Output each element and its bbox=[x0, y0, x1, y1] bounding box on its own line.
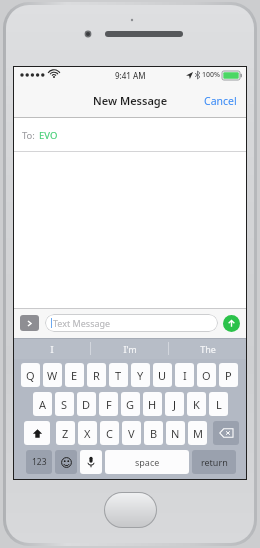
staticText: B bbox=[150, 426, 158, 441]
staticText: The bbox=[200, 343, 216, 355]
staticText: F bbox=[106, 397, 112, 412]
staticText: 100% bbox=[202, 70, 220, 80]
staticText: Text Message bbox=[53, 317, 111, 329]
button[interactable]: I bbox=[175, 363, 194, 387]
button[interactable]: A bbox=[33, 392, 52, 416]
button[interactable]: U bbox=[153, 363, 172, 387]
staticText: EVO bbox=[39, 129, 58, 142]
button[interactable]: D bbox=[77, 392, 96, 416]
staticText: O bbox=[202, 368, 211, 383]
button[interactable]: G bbox=[121, 392, 140, 416]
button[interactable]: The bbox=[169, 338, 246, 359]
button[interactable]: J bbox=[165, 392, 184, 416]
button[interactable]: Dictate bbox=[80, 450, 102, 474]
button[interactable]: K bbox=[187, 392, 206, 416]
staticText: Cancel bbox=[204, 94, 237, 108]
staticText: C bbox=[106, 426, 113, 441]
button[interactable]: Send bbox=[223, 315, 240, 332]
button[interactable]: T bbox=[109, 363, 128, 387]
staticText: M bbox=[193, 426, 203, 441]
button[interactable]: Z bbox=[56, 421, 75, 445]
button[interactable]: Text Message bbox=[45, 314, 218, 332]
staticText: Z bbox=[62, 426, 69, 441]
staticText: W bbox=[47, 368, 58, 383]
staticText: T bbox=[115, 368, 122, 383]
button[interactable]: I bbox=[14, 338, 90, 359]
button[interactable]: Shift bbox=[24, 421, 50, 445]
button[interactable]: F bbox=[99, 392, 118, 416]
staticText: space bbox=[135, 456, 160, 468]
staticText: I bbox=[50, 343, 54, 355]
staticText: R bbox=[93, 368, 100, 383]
staticText: New Message bbox=[93, 93, 168, 108]
button[interactable]: C bbox=[100, 421, 119, 445]
button[interactable]: Home bbox=[105, 493, 156, 527]
button[interactable]: More options bbox=[20, 315, 39, 331]
staticText: I bbox=[183, 368, 187, 383]
button[interactable]: H bbox=[143, 392, 162, 416]
staticText: 123 bbox=[32, 456, 47, 468]
button[interactable]: I'm bbox=[91, 338, 168, 359]
staticText: 9:41 AM bbox=[115, 70, 146, 81]
button[interactable]: Y bbox=[131, 363, 150, 387]
button[interactable]: O bbox=[197, 363, 216, 387]
button[interactable]: M bbox=[188, 421, 207, 445]
staticText: E bbox=[71, 368, 78, 383]
button[interactable]: return bbox=[192, 450, 236, 474]
staticText: Y bbox=[137, 368, 144, 383]
button[interactable]: Delete bbox=[213, 421, 239, 445]
button[interactable]: R bbox=[87, 363, 106, 387]
staticText: P bbox=[225, 368, 232, 383]
staticText: D bbox=[82, 397, 91, 412]
button[interactable]: Q bbox=[21, 363, 40, 387]
staticText: To: bbox=[22, 129, 35, 142]
staticText: K bbox=[193, 397, 200, 412]
staticText: L bbox=[216, 397, 222, 412]
staticText: N bbox=[171, 426, 180, 441]
button[interactable]: Cancel bbox=[195, 88, 246, 114]
button[interactable]: S bbox=[55, 392, 74, 416]
staticText: G bbox=[126, 397, 135, 412]
staticText: I'm bbox=[123, 343, 137, 355]
button[interactable]: space bbox=[105, 450, 189, 474]
staticText: Q bbox=[26, 368, 35, 383]
button[interactable]: W bbox=[43, 363, 62, 387]
staticText: H bbox=[148, 397, 157, 412]
staticText: return bbox=[201, 456, 228, 468]
staticText: X bbox=[84, 426, 91, 441]
button[interactable]: P bbox=[219, 363, 238, 387]
staticText: S bbox=[61, 397, 68, 412]
button[interactable]: X bbox=[78, 421, 97, 445]
staticText: U bbox=[158, 368, 167, 383]
button[interactable]: E bbox=[65, 363, 84, 387]
staticText: A bbox=[39, 397, 47, 412]
button[interactable]: L bbox=[209, 392, 228, 416]
staticText: V bbox=[128, 426, 135, 441]
button[interactable]: B bbox=[144, 421, 163, 445]
button[interactable]: N bbox=[166, 421, 185, 445]
button[interactable]: To: bbox=[14, 118, 246, 152]
staticText: J bbox=[173, 397, 177, 412]
button[interactable]: Emoji bbox=[55, 450, 77, 474]
button[interactable]: V bbox=[122, 421, 141, 445]
button[interactable]: 123 bbox=[26, 450, 52, 474]
